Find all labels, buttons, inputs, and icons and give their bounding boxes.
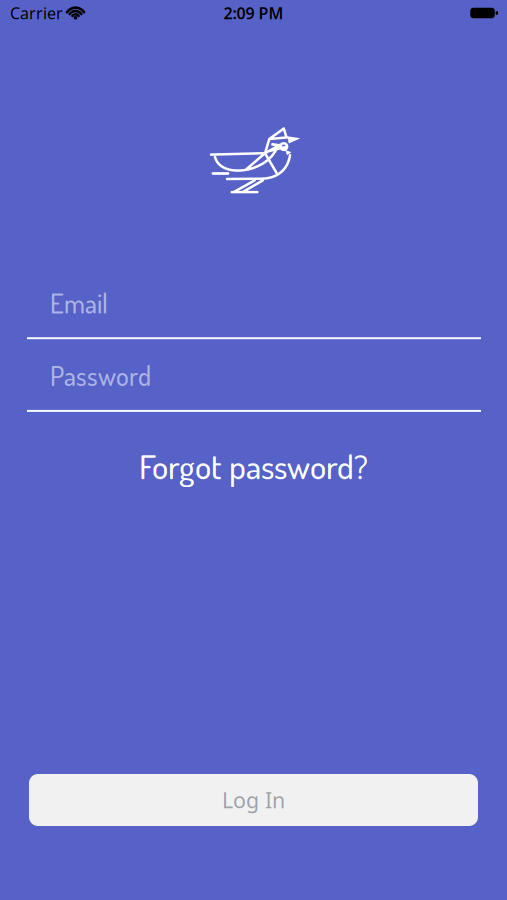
staticText: Password — [50, 359, 151, 392]
button[interactable]: Email — [0, 286, 507, 339]
button[interactable]: Log In — [29, 774, 478, 826]
staticText: Carrier — [10, 2, 63, 24]
staticText: 2:09 PM — [223, 2, 283, 24]
staticText: Forgot password? — [139, 444, 368, 487]
button[interactable]: Forgot password? — [139, 444, 368, 487]
staticText: Email — [50, 286, 108, 320]
staticText: Log In — [222, 786, 285, 814]
button[interactable]: Password — [0, 359, 507, 412]
